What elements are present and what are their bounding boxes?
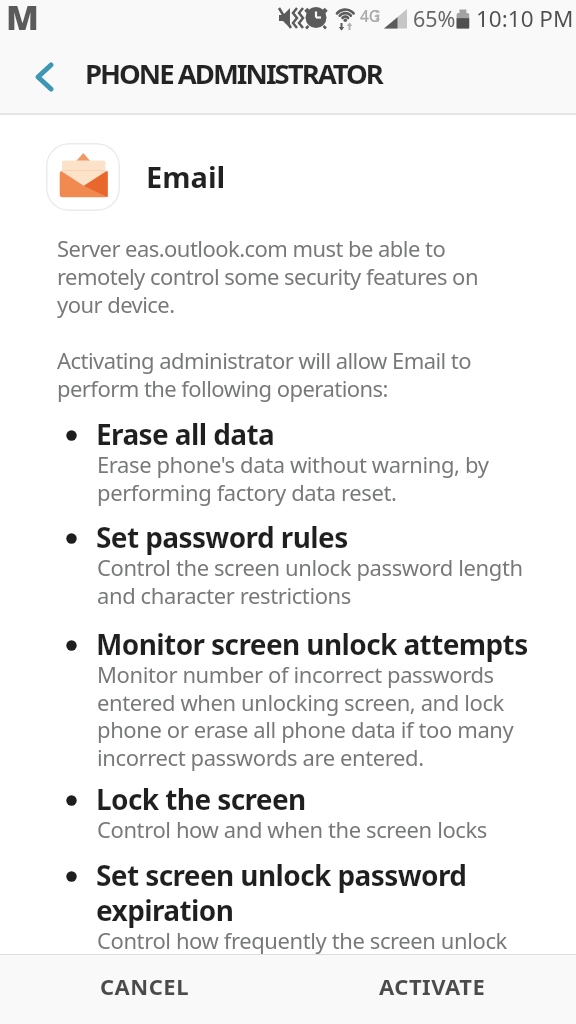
staticText: Monitor number of incorrect passwords [97, 659, 494, 689]
staticText: M [6, 0, 39, 40]
staticText: entered when unlocking screen, and lock [97, 687, 504, 717]
button[interactable]: CANCEL [0, 954, 288, 1024]
staticText: 65% [413, 4, 456, 33]
staticText: 10:10 PM [476, 3, 574, 34]
staticText: and character restrictions [97, 580, 351, 610]
staticText: Control how frequently the screen unlock [97, 925, 507, 955]
staticText: Erase phone's data without warning, by [97, 449, 489, 479]
staticText: Monitor screen unlock attempts [96, 625, 528, 663]
staticText: Control how and when the screen locks [97, 814, 487, 844]
staticText: performing factory data reset. [97, 477, 397, 507]
staticText: 4G [360, 5, 381, 26]
staticText: Set password rules [96, 518, 348, 556]
staticText: Set screen unlock password [96, 856, 467, 894]
staticText: Lock the screen [96, 780, 306, 818]
staticText: incorrect passwords are entered. [97, 742, 424, 772]
staticText: remotely control some security features … [57, 261, 478, 291]
staticText: Erase all data [96, 415, 275, 453]
button[interactable] [46, 143, 120, 211]
button[interactable]: ACTIVATE [288, 954, 576, 1024]
staticText: Email [146, 157, 226, 196]
staticText: ACTIVATE [379, 971, 486, 1001]
staticText: your device. [57, 289, 175, 319]
staticText: Activating administrator will allow Emai… [57, 345, 472, 375]
staticText: CANCEL [100, 971, 189, 1001]
staticText: phone or erase all phone data if too man… [97, 714, 514, 744]
staticText: expiration [96, 891, 234, 929]
staticText: perform the following operations: [57, 373, 388, 403]
button[interactable] [22, 63, 62, 93]
staticText: Control the screen unlock password lengt… [97, 552, 523, 582]
staticText: PHONE ADMINISTRATOR [85, 55, 382, 92]
staticText: Server eas.outlook.com must be able to [57, 233, 446, 263]
